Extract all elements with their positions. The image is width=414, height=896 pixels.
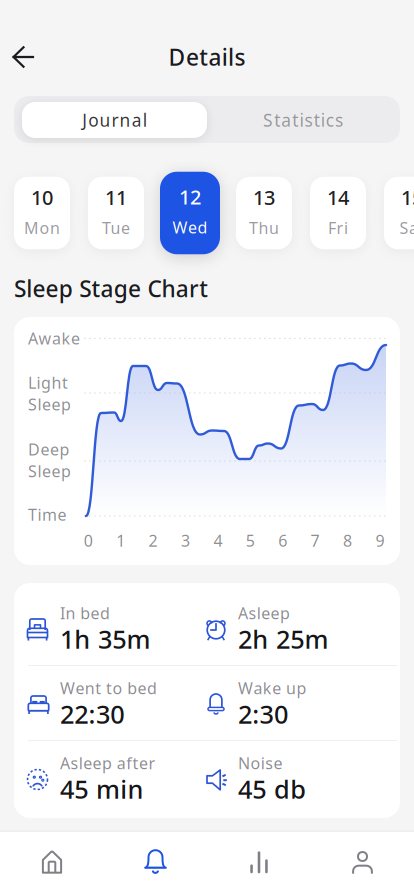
- button[interactable]: 14: [310, 177, 366, 249]
- staticText: Deep: [28, 439, 69, 460]
- staticText: Sleep Stage Chart: [14, 273, 208, 303]
- staticText: 9: [375, 530, 384, 551]
- staticText: Details: [169, 42, 245, 72]
- staticText: Mon: [24, 217, 60, 238]
- staticText: 13: [253, 184, 275, 211]
- button[interactable]: Back: [1, 35, 45, 79]
- staticText: Awake: [28, 328, 80, 349]
- staticText: Thu: [249, 217, 279, 238]
- staticText: Time: [28, 504, 66, 525]
- staticText: 6: [278, 530, 287, 551]
- button[interactable]: Profile: [311, 831, 414, 895]
- staticText: 11: [105, 184, 127, 211]
- staticText: Asleep after: [60, 752, 155, 774]
- button[interactable]: Sleep journal: [104, 831, 207, 895]
- button[interactable]: Statistics: [210, 96, 396, 143]
- staticText: 10: [31, 184, 53, 211]
- button[interactable]: Statistics: [207, 831, 310, 895]
- staticText: Sat: [400, 217, 414, 238]
- staticText: Tue: [102, 217, 130, 238]
- staticText: 1: [116, 530, 125, 551]
- staticText: 7: [311, 530, 320, 551]
- button[interactable]: 12: [160, 172, 220, 254]
- staticText: Fri: [328, 217, 348, 238]
- button[interactable]: Home: [0, 831, 103, 895]
- staticText: Asleep: [238, 602, 290, 624]
- staticText: Light: [28, 372, 68, 393]
- staticText: 8: [343, 530, 352, 551]
- staticText: 2: [149, 530, 158, 551]
- staticText: Journal: [82, 108, 147, 131]
- staticText: Went to bed: [60, 677, 157, 699]
- staticText: 15: [401, 184, 414, 211]
- button[interactable]: 11: [88, 177, 144, 249]
- staticText: 45 min: [60, 772, 143, 806]
- staticText: Wake up: [238, 677, 306, 699]
- button[interactable]: 10: [14, 177, 70, 249]
- staticText: 1h 35m: [60, 622, 150, 656]
- staticText: In bed: [60, 602, 110, 624]
- staticText: 4: [213, 530, 222, 551]
- button[interactable]: 13: [236, 177, 292, 249]
- staticText: 14: [327, 184, 349, 211]
- staticText: Noise: [238, 752, 283, 774]
- staticText: 22:30: [60, 697, 124, 731]
- staticText: 12: [179, 183, 201, 210]
- staticText: 0: [84, 530, 93, 551]
- staticText: Statistics: [263, 108, 343, 131]
- button[interactable]: Journal: [22, 102, 207, 138]
- staticText: Sleep: [28, 460, 71, 482]
- staticText: Sleep: [28, 394, 71, 415]
- staticText: 2:30: [238, 697, 288, 731]
- staticText: 45 db: [238, 772, 306, 806]
- button[interactable]: 15: [384, 177, 414, 249]
- staticText: 3: [181, 530, 190, 551]
- staticText: 2h 25m: [238, 622, 328, 656]
- staticText: Wed: [173, 217, 207, 238]
- staticText: 5: [246, 530, 255, 551]
